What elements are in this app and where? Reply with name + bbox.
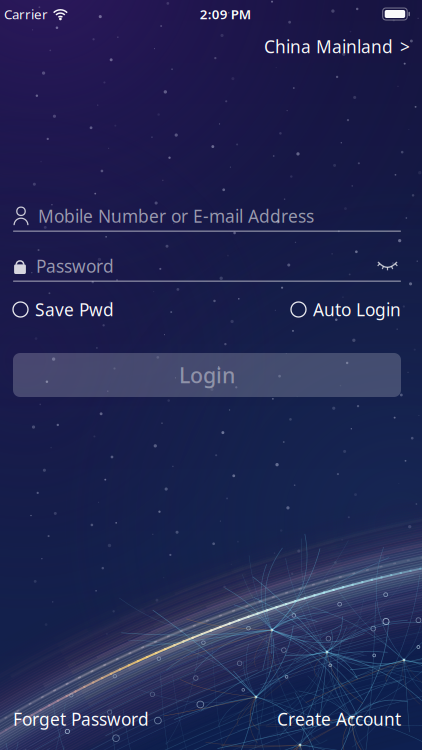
staticText: Save Pwd	[35, 298, 114, 321]
staticText: Create Account	[277, 707, 401, 730]
button[interactable]: Auto Login	[291, 298, 401, 321]
staticText: 2:09 PM	[200, 5, 251, 23]
staticText: Carrier	[4, 5, 48, 23]
staticText: Login	[179, 361, 235, 389]
button[interactable]: Create Account	[277, 707, 401, 730]
staticText: >	[400, 35, 410, 58]
button[interactable]: Login	[13, 353, 401, 397]
staticText: China Mainland	[264, 35, 393, 58]
staticText: Mobile Number or E-mail Address	[38, 204, 314, 227]
button[interactable]: China Mainland	[256, 30, 418, 63]
staticText: Password	[36, 254, 114, 277]
staticText: Auto Login	[313, 298, 401, 321]
button[interactable]: Forget Password	[13, 707, 149, 730]
button[interactable]: Save Pwd	[13, 298, 114, 321]
staticText: Forget Password	[13, 707, 149, 730]
button[interactable]: Show password	[374, 254, 401, 278]
